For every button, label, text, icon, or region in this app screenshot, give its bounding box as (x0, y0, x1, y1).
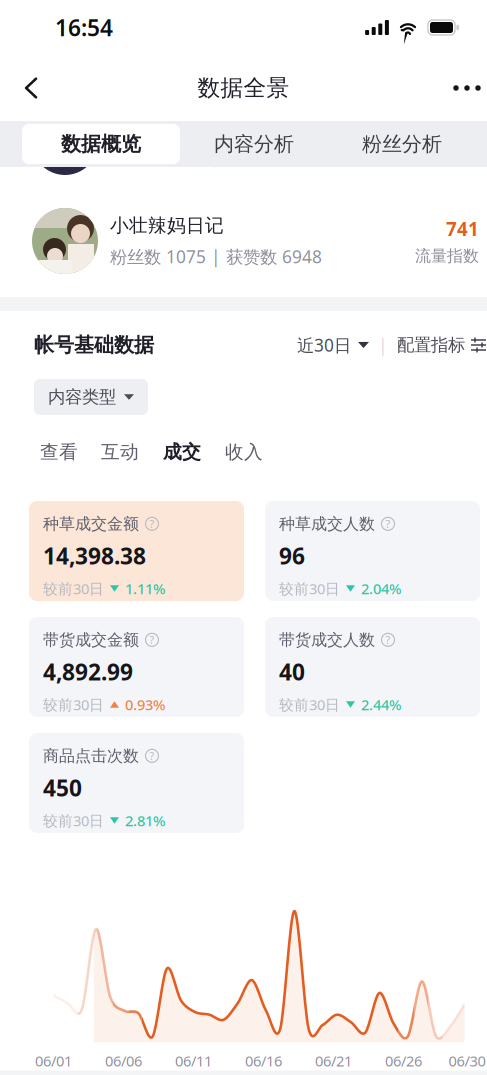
staticText: 收入 (225, 440, 263, 463)
staticText: 种草成交金额 (43, 514, 139, 534)
staticText: ? (149, 633, 154, 647)
button[interactable]: 粉丝分析 (328, 124, 476, 164)
staticText: 成交 (163, 440, 201, 463)
button[interactable]: 内容分析 (180, 124, 328, 164)
staticText: 06/16 (245, 1051, 282, 1070)
staticText: ? (149, 517, 154, 531)
staticText: 4,892.99 (43, 657, 133, 687)
staticText: 粉丝数 1075 | 获赞数 6948 (110, 245, 322, 268)
button[interactable]: 查看 (29, 435, 89, 469)
staticText: 帐号基础数据 (34, 333, 154, 357)
staticText: 带货成交金额 (43, 630, 139, 650)
staticText: 06/21 (315, 1051, 352, 1070)
staticText: 06/01 (35, 1051, 72, 1070)
button[interactable]: 商品点击次数 (29, 733, 244, 833)
button[interactable]: 互动 (89, 435, 151, 469)
button[interactable]: 内容类型 (34, 379, 148, 415)
staticText: 互动 (101, 440, 139, 463)
staticText: ? (385, 517, 390, 531)
staticText: 较前30日 (43, 695, 104, 714)
button[interactable]: 小壮辣妈日记 (0, 185, 487, 297)
staticText: ? (385, 633, 390, 647)
staticText: 数据全景 (197, 74, 289, 102)
staticText: ? (149, 749, 154, 763)
staticText: 带货成交人数 (279, 630, 375, 650)
staticText: 1.11% (125, 579, 165, 598)
staticText: 粉丝数 2038 | 获赞数 11263 (110, 146, 332, 169)
staticText: | (378, 333, 388, 356)
button[interactable]: 种草成交金额 (29, 501, 244, 601)
staticText: 06/11 (175, 1051, 212, 1070)
staticText: 内容类型 (48, 386, 116, 408)
staticText: 06/06 (105, 1051, 142, 1070)
staticText: 06/30 (448, 1051, 485, 1070)
button[interactable]: 数据概览 (22, 124, 180, 164)
button[interactable]: 收入 (213, 435, 275, 469)
staticText: 流量指数 (415, 246, 479, 266)
staticText: 粉丝分析 (362, 132, 442, 156)
staticText: 96 (279, 541, 305, 571)
staticText: 商品点击次数 (43, 746, 139, 766)
staticText: 14,398.38 (43, 541, 146, 571)
staticText: 数据概览 (61, 132, 141, 156)
staticText: 2.81% (125, 811, 165, 830)
staticText: 较前30日 (279, 695, 340, 714)
staticText: 741 (446, 216, 479, 241)
staticText: 流量指数 (415, 147, 479, 167)
button[interactable]: 配置指标 (397, 334, 486, 356)
staticText: 16:54 (55, 12, 113, 42)
staticText: 0.93% (125, 695, 165, 714)
staticText: 小壮辣妈日记 (110, 214, 224, 237)
button[interactable]: 成交 (151, 435, 213, 469)
staticText: 2.44% (361, 695, 401, 714)
button[interactable]: 更多 (447, 64, 487, 112)
staticText: 2.04% (361, 579, 401, 598)
staticText: 40 (279, 657, 305, 687)
staticText: 较前30日 (43, 579, 104, 598)
staticText: 近30日 (297, 333, 351, 356)
button[interactable]: 带货成交金额 (29, 617, 244, 717)
staticText: 06/26 (385, 1051, 422, 1070)
button[interactable]: 种草成交人数 (265, 501, 480, 601)
staticText: 配置指标 (397, 334, 465, 356)
button[interactable]: 带货成交人数 (265, 617, 480, 717)
staticText: 较前30日 (43, 811, 104, 830)
staticText: 450 (43, 773, 82, 803)
staticText: 种草成交人数 (279, 514, 375, 534)
staticText: 查看 (40, 440, 78, 463)
button[interactable]: 返回 (7, 64, 55, 112)
staticText: 618 (446, 117, 479, 142)
staticText: 小宝贝的日常 (110, 115, 224, 138)
staticText: 内容分析 (214, 132, 294, 156)
staticText: 较前30日 (279, 579, 340, 598)
button[interactable]: 近30日 (297, 333, 369, 356)
